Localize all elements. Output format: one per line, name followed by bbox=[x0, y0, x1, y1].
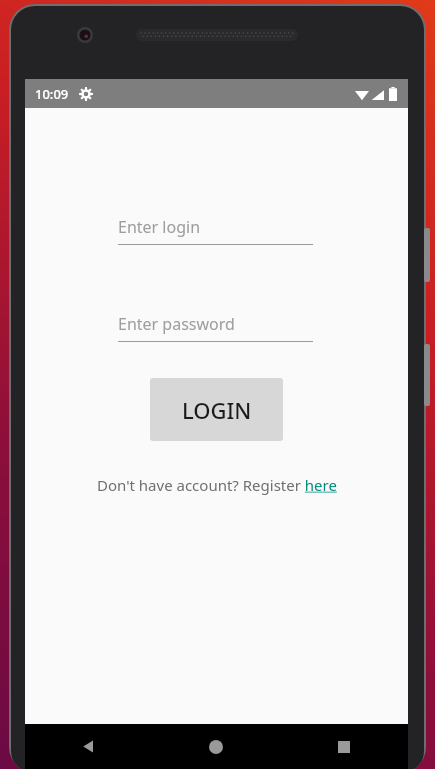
staticText: 10:09 bbox=[35, 85, 69, 103]
button[interactable]: Home bbox=[152, 724, 280, 769]
button[interactable]: Enter login bbox=[118, 216, 313, 245]
button[interactable]: LOGIN bbox=[150, 378, 283, 441]
button[interactable]: Enter password bbox=[118, 313, 313, 342]
staticText: Enter password bbox=[118, 313, 235, 335]
staticText: Enter login bbox=[118, 216, 201, 238]
button[interactable]: Recent apps bbox=[280, 724, 408, 769]
button[interactable]: Don't have account? Register here bbox=[25, 472, 408, 498]
button[interactable]: Back bbox=[25, 724, 152, 769]
staticText: LOGIN bbox=[182, 395, 252, 425]
staticText: Don't have account? Register here bbox=[97, 475, 337, 495]
